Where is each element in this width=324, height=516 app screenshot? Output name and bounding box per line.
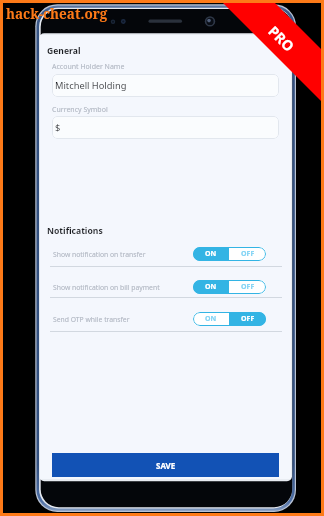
staticText: ON [205, 249, 217, 259]
button[interactable]: ON [193, 280, 266, 294]
staticText: Notifications [47, 225, 103, 237]
staticText: OFF [241, 249, 255, 259]
staticText: Account Holder Name [52, 62, 125, 72]
button[interactable]: Mitchell Holding [52, 74, 279, 97]
button[interactable]: SAVE [52, 453, 279, 477]
staticText: Show notification on transfer [53, 250, 193, 259]
staticText: $ [55, 121, 61, 134]
staticText: Show notification on bill payment [53, 283, 193, 292]
staticText: Send OTP while transfer [53, 315, 193, 324]
staticText: General [47, 45, 81, 57]
staticText: Mitchell Holding [55, 79, 127, 92]
staticText: Currency Symbol [52, 105, 108, 115]
button[interactable]: Send OTP while transfer [40, 306, 291, 332]
staticText: hack-cheat.org [6, 5, 108, 23]
button[interactable]: Show notification on bill payment [40, 274, 291, 300]
staticText: OFF [241, 314, 255, 324]
staticText: ON [205, 314, 217, 324]
staticText: ON [205, 282, 217, 292]
button[interactable]: ON [193, 312, 266, 326]
staticText: SAVE [156, 460, 176, 471]
staticText: OFF [241, 282, 255, 292]
button[interactable]: Show notification on transfer [40, 241, 291, 267]
staticText: PRO [264, 21, 298, 55]
button[interactable]: $ [52, 116, 279, 139]
button[interactable]: ON [193, 247, 266, 261]
